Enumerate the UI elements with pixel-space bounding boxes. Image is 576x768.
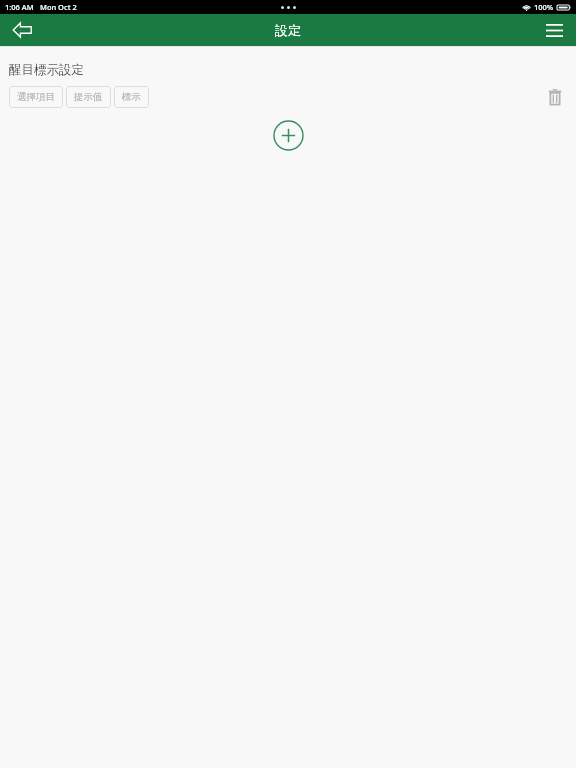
staticText: 100% [534, 2, 554, 12]
button[interactable]: 選擇項目 [9, 86, 63, 108]
staticText: 提示值 [74, 91, 103, 103]
button[interactable]: 標示 [114, 86, 149, 108]
staticText: 標示 [122, 91, 141, 103]
button[interactable]: Add [273, 120, 304, 151]
staticText: 設定 [275, 22, 301, 38]
button[interactable]: Delete [543, 85, 567, 109]
staticText: 醒目標示設定 [9, 62, 84, 78]
button[interactable]: Back [0, 14, 44, 46]
button[interactable]: Menu [532, 14, 576, 46]
button[interactable]: 提示值 [66, 86, 111, 108]
staticText: 選擇項目 [17, 91, 55, 103]
staticText: 1:06 AM [5, 2, 34, 12]
staticText: Mon Oct 2 [40, 2, 77, 12]
